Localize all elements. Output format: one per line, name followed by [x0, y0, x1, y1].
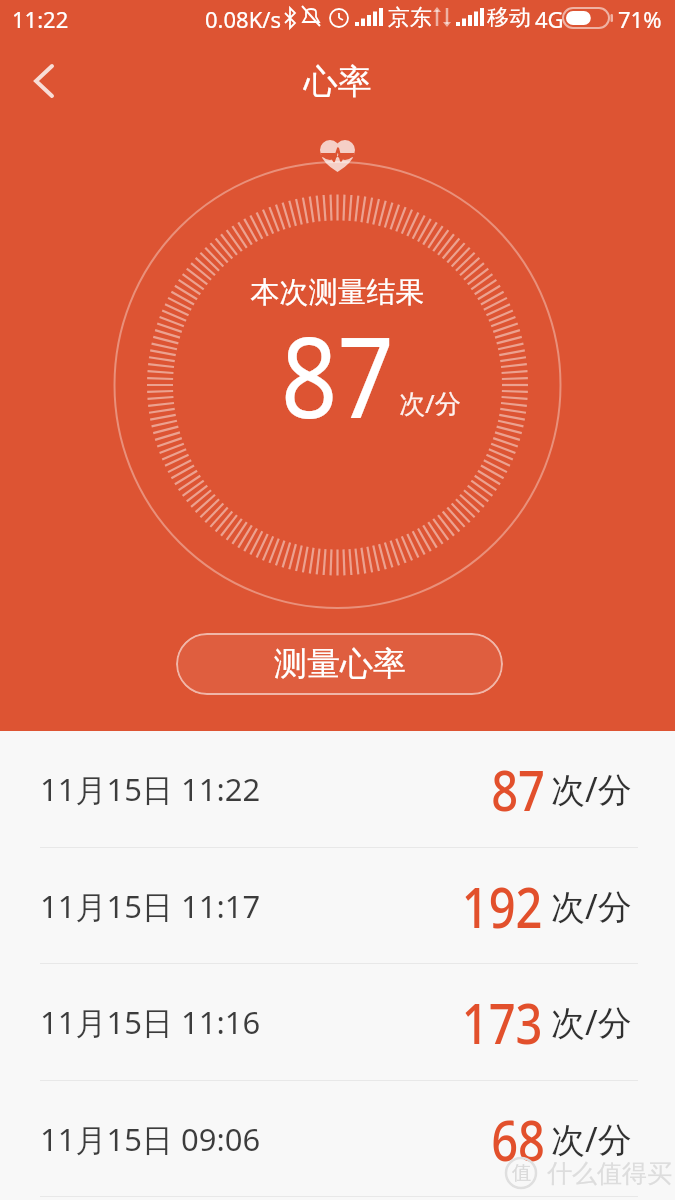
staticText: 68 [491, 1101, 546, 1177]
staticText: 11月15日 11:22 [40, 768, 261, 810]
staticText: 173 [462, 984, 543, 1060]
staticText: 次/分 [551, 999, 632, 1045]
button[interactable]: 11月15日 11:17 [0, 848, 675, 964]
staticText: 11月15日 11:17 [40, 885, 261, 927]
staticText: 192 [462, 868, 543, 944]
staticText: 移动 [487, 4, 531, 32]
staticText: 次/分 [551, 766, 632, 812]
staticText: 11月15日 11:16 [40, 1001, 261, 1043]
staticText: 87 [40, 298, 634, 451]
staticText: 次/分 [551, 1116, 632, 1162]
staticText: 次/分 [551, 883, 632, 929]
button[interactable]: 测量心率 [176, 633, 503, 695]
staticText: 京东 [388, 4, 432, 32]
staticText: 本次测量结果 [0, 274, 675, 311]
button[interactable]: 11月15日 09:06 [0, 1081, 675, 1197]
staticText: 11月15日 09:06 [40, 1118, 261, 1160]
button[interactable]: 11月15日 11:22 [0, 731, 675, 848]
staticText: 4G [535, 4, 564, 34]
staticText: 87 [491, 751, 546, 827]
staticText: 什么值得买 [547, 1158, 672, 1189]
staticText: 71% [618, 4, 662, 34]
staticText: 测量心率 [274, 643, 406, 685]
button[interactable]: 11月15日 11:16 [0, 964, 675, 1081]
button[interactable] [20, 56, 68, 104]
staticText: 11:22 [12, 4, 69, 34]
staticText: 0.08K/s [205, 4, 281, 34]
staticText: 值 [512, 1161, 531, 1185]
staticText: 次/分 [399, 385, 461, 421]
staticText: 心率 [0, 60, 675, 103]
